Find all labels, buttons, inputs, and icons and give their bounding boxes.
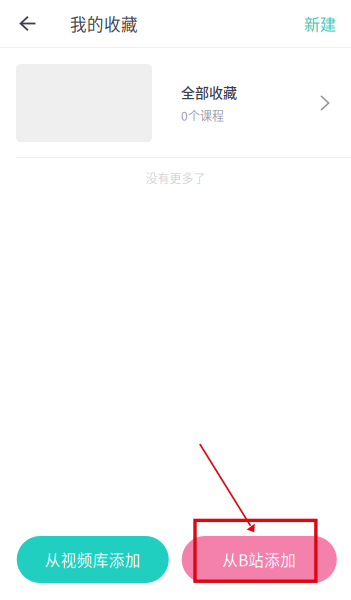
- button[interactable]: Back: [0, 0, 51, 47]
- button[interactable]: 全部收藏: [0, 48, 351, 157]
- button[interactable]: 从B站添加: [182, 536, 337, 583]
- staticText: 从B站添加: [222, 548, 296, 571]
- staticText: 0个课程: [181, 107, 224, 124]
- staticText: 新建: [304, 12, 336, 35]
- staticText: 没有更多了: [145, 169, 205, 187]
- button[interactable]: 新建: [290, 0, 351, 47]
- staticText: 从视频库添加: [45, 548, 141, 571]
- staticText: 全部收藏: [181, 82, 237, 102]
- button[interactable]: 从视频库添加: [17, 536, 169, 583]
- staticText: 我的收藏: [70, 12, 138, 35]
